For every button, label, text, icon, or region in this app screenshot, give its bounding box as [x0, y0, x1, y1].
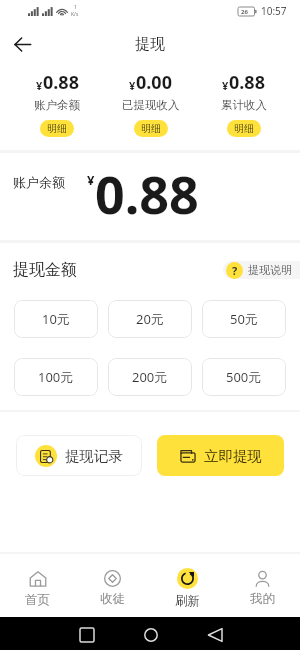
staticText: 50元	[230, 310, 258, 328]
staticText: 我的	[250, 591, 275, 607]
button[interactable]: 我的	[225, 560, 300, 617]
button[interactable]: 50元	[202, 300, 286, 338]
staticText: 0.88	[43, 70, 79, 95]
staticText: K/s	[71, 11, 79, 18]
staticText: ¥	[222, 78, 229, 93]
staticText: 26	[241, 8, 248, 16]
staticText: 明细	[47, 122, 67, 135]
button[interactable]: 刷新	[150, 560, 225, 617]
staticText: 200元	[132, 368, 168, 386]
staticText: 立即提现	[204, 447, 262, 465]
staticText: 账户余额	[13, 174, 65, 190]
staticText: 提现记录	[65, 447, 123, 465]
staticText: 500元	[226, 368, 262, 386]
staticText: 0.00	[136, 70, 172, 95]
staticText: 首页	[25, 592, 50, 608]
staticText: 0.88	[95, 158, 199, 229]
button[interactable]: Home	[144, 628, 158, 642]
staticText: ¥	[36, 78, 43, 93]
button[interactable]: 100元	[14, 358, 98, 396]
button[interactable]: ?	[223, 261, 300, 279]
staticText: 已提现收入	[122, 98, 180, 112]
staticText: 提现说明	[248, 263, 292, 277]
staticText: 收徒	[100, 591, 125, 607]
button[interactable]: 明细	[40, 120, 74, 137]
staticText: ¥	[129, 78, 136, 93]
staticText: 20元	[136, 310, 164, 328]
button[interactable]: 200元	[108, 358, 192, 396]
button[interactable]: Back	[208, 628, 222, 642]
staticText: ?	[232, 263, 238, 278]
button[interactable]: 明细	[227, 120, 261, 137]
staticText: 账户余额	[34, 98, 80, 112]
staticText: 0.88	[229, 70, 265, 95]
staticText: 100元	[38, 368, 74, 386]
staticText: ¥	[87, 171, 95, 189]
staticText: 10元	[42, 310, 70, 328]
staticText: 明细	[234, 122, 254, 135]
button[interactable]: 明细	[134, 120, 168, 137]
button[interactable]: 首页	[0, 560, 75, 617]
staticText: 刷新	[175, 593, 200, 609]
staticText: 累计收入	[221, 98, 267, 112]
button[interactable]: Back	[6, 28, 38, 60]
staticText: 1	[74, 4, 77, 11]
staticText: 提现	[135, 35, 165, 54]
button[interactable]: 20元	[108, 300, 192, 338]
button[interactable]: 10元	[14, 300, 98, 338]
staticText: 10:57	[261, 4, 287, 18]
staticText: 明细	[141, 122, 161, 135]
button[interactable]: 立即提现	[157, 435, 284, 476]
staticText: 提现金额	[13, 260, 77, 280]
button[interactable]: Recents	[80, 628, 94, 642]
button[interactable]: 提现记录	[16, 435, 142, 476]
button[interactable]: 500元	[202, 358, 286, 396]
button[interactable]: 收徒	[75, 560, 150, 617]
